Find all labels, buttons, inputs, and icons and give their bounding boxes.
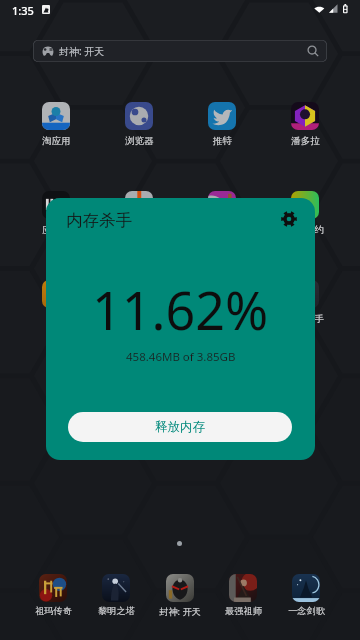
staticText: 天气: [213, 313, 232, 325]
staticText: 封神: 开天: [159, 605, 201, 618]
button[interactable]: 时钟: [112, 280, 166, 325]
staticText: 458.46MB of 3.85GB: [126, 349, 236, 365]
button[interactable]: 天气: [195, 280, 249, 325]
staticText: 一念剑歌: [288, 605, 325, 617]
staticText: 内存杀手: [66, 210, 132, 231]
staticText: 潘多拉: [291, 135, 320, 147]
button[interactable]: 最强祖师: [215, 574, 271, 617]
staticText: 时钟: [130, 313, 149, 325]
button[interactable]: 祖玛传奇: [25, 574, 81, 617]
button[interactable]: 应用店: [29, 191, 83, 236]
staticText: 图库预约: [286, 224, 324, 236]
staticText: 应用店: [42, 224, 71, 236]
button[interactable]: 封神: 开天: [152, 574, 208, 618]
staticText: 最强祖师: [225, 605, 262, 617]
staticText: 黎明之塔: [98, 605, 135, 617]
button[interactable]: 潘多拉: [278, 102, 332, 147]
button[interactable]: 相机: [112, 191, 166, 236]
button[interactable]: 封神: 开天: [33, 40, 327, 62]
staticText: 封神: 开天: [59, 44, 105, 58]
button[interactable]: 游戏助手: [278, 280, 332, 325]
staticText: 释放内存: [155, 419, 205, 435]
button[interactable]: 一念剑歌: [278, 574, 334, 617]
button[interactable]: 日历: [29, 280, 83, 325]
button[interactable]: 音乐: [195, 191, 249, 236]
staticText: 推特: [213, 135, 232, 147]
staticText: 祖玛传奇: [35, 605, 72, 617]
button[interactable]: 推特: [195, 102, 249, 147]
button[interactable]: 释放内存: [68, 412, 292, 442]
button[interactable]: 浏览器: [112, 102, 166, 147]
staticText: 淘应用: [42, 135, 71, 147]
staticText: 浏览器: [125, 135, 154, 147]
button[interactable]: 黎明之塔: [88, 574, 144, 617]
button[interactable]: Settings: [278, 208, 300, 230]
button[interactable]: 图库预约: [278, 191, 332, 236]
staticText: 1:35: [12, 3, 34, 18]
staticText: 游戏助手: [286, 313, 324, 325]
button[interactable]: 淘应用: [29, 102, 83, 147]
staticText: 11.62%: [92, 274, 269, 345]
